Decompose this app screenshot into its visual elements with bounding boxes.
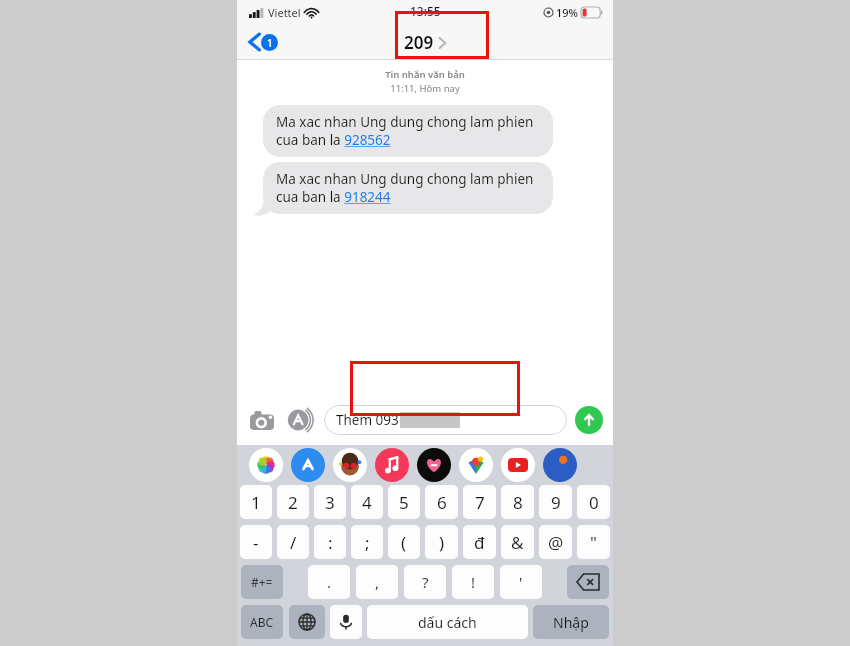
button[interactable]: App 2 (333, 448, 367, 482)
staticText: & (511, 531, 524, 554)
button[interactable]: 209 (404, 31, 446, 54)
button[interactable]: App 3 (375, 448, 409, 482)
button[interactable]: Change keyboard language (289, 605, 325, 639)
button[interactable]: App Store (285, 405, 315, 435)
staticText: Them 093 (336, 411, 399, 429)
button[interactable]: dấu cách (367, 605, 528, 639)
button[interactable]: 9 (539, 485, 572, 519)
button[interactable]: App 4 (417, 448, 451, 482)
button[interactable]: ; (351, 525, 383, 559)
staticText: 3 (325, 491, 335, 514)
button[interactable]: #+= (241, 565, 283, 599)
button[interactable]: Them 093 (324, 405, 567, 435)
staticText: 19% (556, 5, 578, 20)
staticText: , (375, 572, 380, 592)
button[interactable]: 7 (463, 485, 496, 519)
button[interactable]: 8 (501, 485, 534, 519)
staticText: Ma xac nhan Ung dung chong lam phien cua… (276, 170, 540, 206)
staticText: Tin nhắn văn bản (237, 68, 613, 81)
staticText: 6 (437, 491, 447, 514)
staticText: 9 (551, 491, 561, 514)
staticText: ABC (250, 614, 274, 630)
button[interactable]: Ma xac nhan Ung dung chong lam phien cua… (263, 105, 553, 157)
staticText: 5 (399, 491, 409, 514)
staticText: ' (519, 572, 523, 592)
button[interactable]: 5 (388, 485, 420, 519)
button[interactable]: Nhập (533, 605, 609, 639)
staticText: Ma xac nhan Ung dung chong lam phien cua… (276, 113, 540, 149)
button[interactable]: ? (404, 565, 446, 599)
staticText: 1 (267, 36, 273, 50)
staticText: . (327, 572, 332, 592)
button[interactable]: Dictation (330, 605, 362, 639)
button[interactable]: App 0 (249, 448, 283, 482)
button[interactable]: App 5 (459, 448, 493, 482)
staticText: Nhập (553, 613, 589, 632)
staticText: 1 (251, 491, 261, 514)
button[interactable]: 4 (351, 485, 383, 519)
button[interactable]: 3 (314, 485, 346, 519)
button[interactable]: App 1 (291, 448, 325, 482)
staticText: ( (401, 531, 407, 554)
staticText: 8 (513, 491, 523, 514)
button[interactable]: 2 (277, 485, 309, 519)
staticText: 0 (589, 491, 599, 514)
staticText: ) (439, 531, 445, 554)
staticText: Viettel (268, 5, 301, 20)
staticText: ? (422, 572, 429, 592)
button[interactable]: 0 (577, 485, 610, 519)
button[interactable]: ( (388, 525, 420, 559)
staticText: @ (548, 531, 564, 554)
staticText: 13:55 (410, 3, 441, 19)
button[interactable]: 1 (240, 485, 272, 519)
button[interactable]: Camera (247, 405, 277, 435)
button[interactable]: 6 (425, 485, 458, 519)
staticText: đ (474, 531, 485, 554)
staticText: #+= (251, 574, 273, 590)
button[interactable]: đ (463, 525, 496, 559)
button[interactable]: . (308, 565, 350, 599)
button[interactable]: Send (575, 406, 603, 434)
staticText: / (290, 531, 297, 554)
staticText: dấu cách (418, 613, 477, 632)
staticText: 4 (362, 491, 372, 514)
button[interactable]: App 6 (501, 448, 535, 482)
button[interactable]: : (314, 525, 346, 559)
staticText: : (328, 531, 333, 554)
button[interactable]: Ma xac nhan Ung dung chong lam phien cua… (263, 162, 553, 214)
staticText: 7 (475, 491, 485, 514)
button[interactable]: @ (539, 525, 572, 559)
staticText: " (590, 531, 597, 554)
staticText: ; (365, 531, 370, 554)
button[interactable]: App 7 (543, 448, 577, 482)
staticText: 11:11, Hôm nay (237, 82, 613, 95)
button[interactable]: Backspace (567, 565, 609, 599)
button[interactable]: ABC (241, 605, 283, 639)
button[interactable]: ' (500, 565, 542, 599)
button[interactable]: - (240, 525, 272, 559)
button[interactable]: / (277, 525, 309, 559)
button[interactable]: & (501, 525, 534, 559)
staticText: - (253, 531, 259, 554)
staticText: ! (471, 572, 476, 592)
button[interactable]: Back (245, 29, 282, 55)
button[interactable]: ) (425, 525, 458, 559)
button[interactable]: , (356, 565, 398, 599)
staticText: 209 (404, 31, 434, 54)
button[interactable]: " (577, 525, 610, 559)
button[interactable]: ! (452, 565, 494, 599)
staticText: 2 (288, 491, 298, 514)
